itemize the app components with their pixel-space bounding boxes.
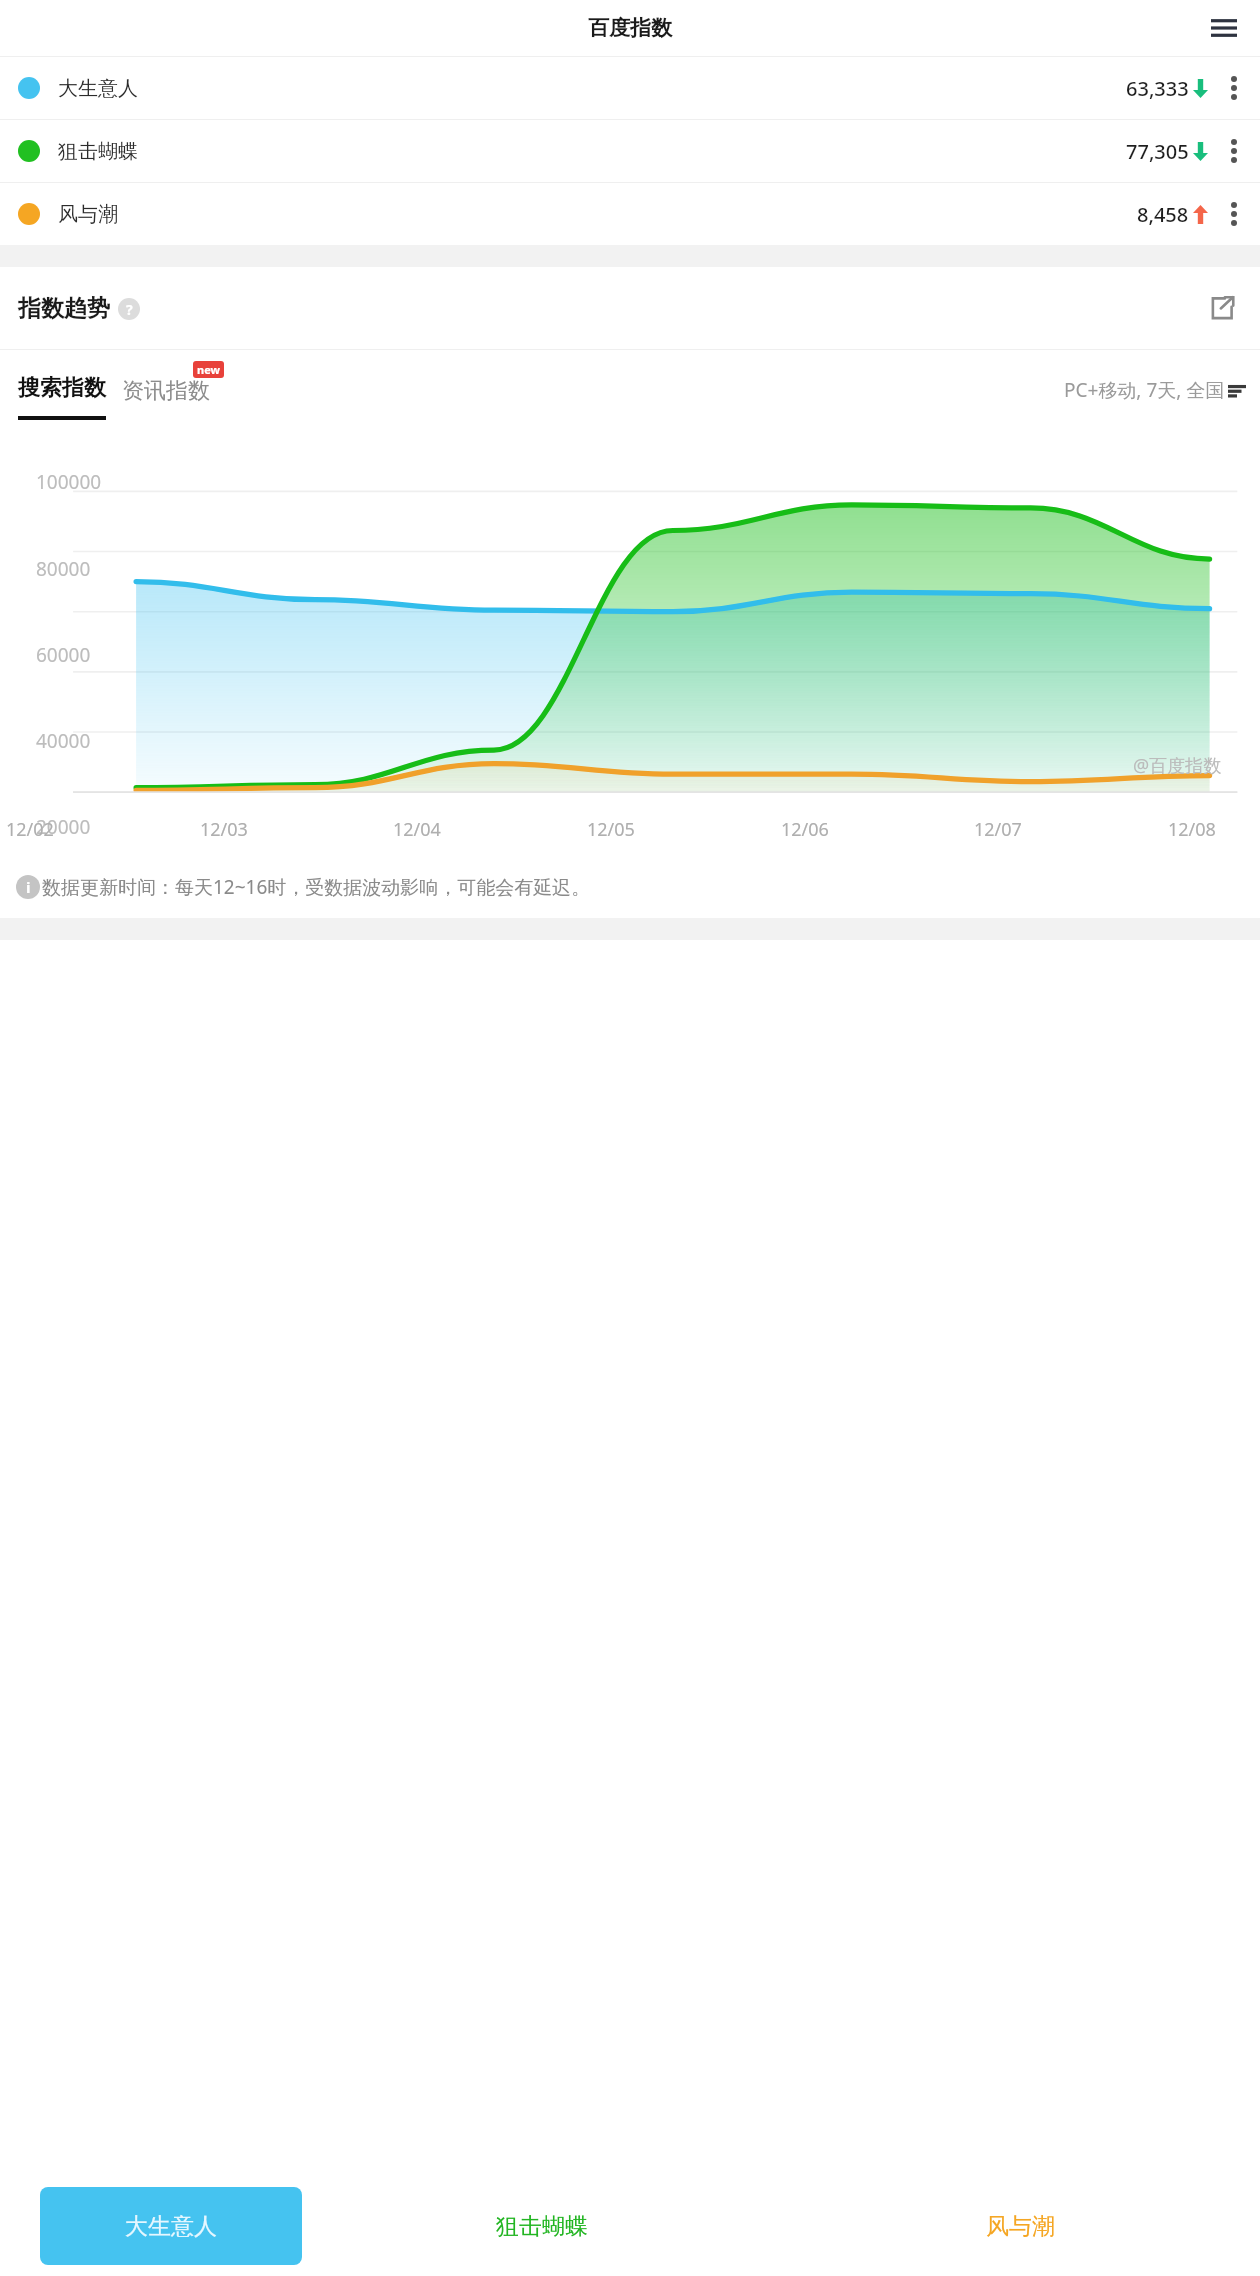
staticText: 指数趋势 — [18, 294, 110, 323]
staticText: 63,333 — [1126, 75, 1189, 102]
button[interactable]: 大生意人 — [0, 57, 1260, 119]
button[interactable]: 搜索指数 — [18, 374, 106, 402]
staticText: 12/04 — [393, 817, 467, 842]
button[interactable]: More options — [1208, 120, 1260, 182]
button[interactable]: PC+移动, 7天, 全国 — [1064, 377, 1246, 403]
button[interactable]: Open in new — [1200, 286, 1244, 330]
button[interactable]: 资讯指数 — [122, 377, 210, 405]
staticText: 12/07 — [974, 817, 1048, 842]
staticText: 8,458 — [1137, 201, 1189, 228]
button[interactable]: 狙击蝴蝶 — [302, 2176, 781, 2276]
staticText: 12/05 — [587, 817, 661, 842]
staticText: 12/08 — [1168, 817, 1242, 842]
staticText: 大生意人 — [125, 2212, 217, 2241]
staticText: 搜索指数 — [18, 374, 106, 402]
staticText: 60000 — [36, 642, 91, 668]
staticText: 大生意人 — [58, 76, 138, 101]
staticText: 狙击蝴蝶 — [58, 139, 138, 164]
button[interactable]: 大生意人 — [40, 2187, 302, 2265]
button[interactable]: 狙击蝴蝶 — [0, 120, 1260, 182]
button[interactable]: More options — [1208, 57, 1260, 119]
staticText: ? — [126, 300, 133, 319]
staticText: 百度指数 — [588, 15, 672, 41]
staticText: @百度指数 — [1133, 753, 1222, 778]
staticText: 77,305 — [1126, 138, 1189, 165]
staticText: 40000 — [36, 728, 91, 754]
staticText: 12/03 — [200, 817, 274, 842]
staticText: 风与潮 — [58, 202, 118, 227]
button[interactable]: 风与潮 — [0, 183, 1260, 245]
button[interactable]: Menu — [1202, 6, 1246, 50]
staticText: 狙击蝴蝶 — [496, 2212, 588, 2241]
button[interactable]: More options — [1208, 183, 1260, 245]
staticText: 20000 — [36, 814, 91, 840]
staticText: i — [26, 877, 31, 897]
staticText: 数据更新时间：每天12~16时，受数据波动影响，可能会有延迟。 — [42, 874, 591, 900]
staticText: 0 — [36, 900, 47, 926]
staticText: new — [197, 362, 220, 377]
staticText: 风与潮 — [986, 2212, 1055, 2241]
staticText: 12/06 — [781, 817, 855, 842]
button[interactable]: 风与潮 — [781, 2176, 1260, 2276]
button[interactable]: Help — [118, 298, 140, 320]
staticText: 资讯指数 — [122, 377, 210, 405]
staticText: 80000 — [36, 556, 91, 582]
staticText: 100000 — [36, 469, 102, 495]
staticText: 12/02 — [6, 817, 80, 842]
staticText: PC+移动, 7天, 全国 — [1064, 377, 1225, 403]
